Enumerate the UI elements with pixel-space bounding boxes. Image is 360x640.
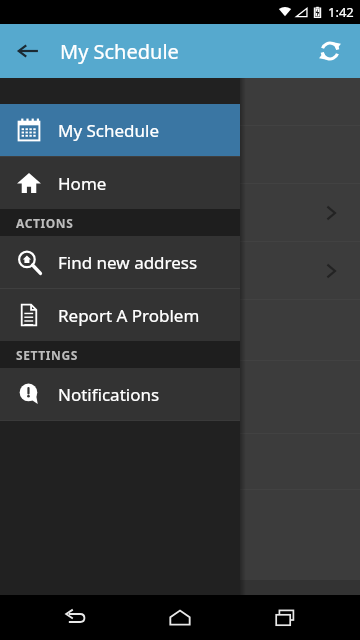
staticText: My Schedule — [60, 38, 179, 65]
button[interactable]: My Schedule — [0, 104, 240, 156]
button[interactable] — [0, 434, 360, 489]
staticText: review the schedule carefully. — [16, 399, 223, 419]
button[interactable]: Please check your number and — [0, 490, 360, 580]
staticText: Find new address — [58, 251, 198, 274]
button[interactable] — [0, 242, 360, 299]
button[interactable]: Home — [0, 157, 240, 209]
button[interactable]: Report A Problem — [0, 289, 240, 341]
staticText: Please check your number and — [16, 376, 233, 396]
button[interactable]: Please check your number and — [0, 361, 360, 433]
button[interactable]: Back — [8, 31, 48, 71]
staticText: 1:42 — [328, 3, 354, 21]
staticText: Home — [58, 172, 107, 195]
button[interactable]: Find new address — [0, 236, 240, 288]
button[interactable]: Notifications — [0, 368, 240, 420]
button[interactable] — [0, 126, 360, 183]
button[interactable] — [0, 78, 360, 125]
staticText: ACTIONS — [16, 215, 74, 231]
staticText: SETTINGS — [16, 347, 78, 363]
staticText: Notifications — [58, 383, 160, 406]
button[interactable] — [0, 184, 360, 241]
staticText: My Schedule — [58, 119, 160, 142]
button[interactable]: Back — [45, 595, 105, 640]
staticText: Report A Problem — [58, 304, 200, 327]
button[interactable]: Refresh — [308, 29, 352, 73]
button[interactable] — [0, 300, 360, 360]
button[interactable]: Home — [150, 595, 210, 640]
button[interactable]: Recent apps — [255, 595, 315, 640]
